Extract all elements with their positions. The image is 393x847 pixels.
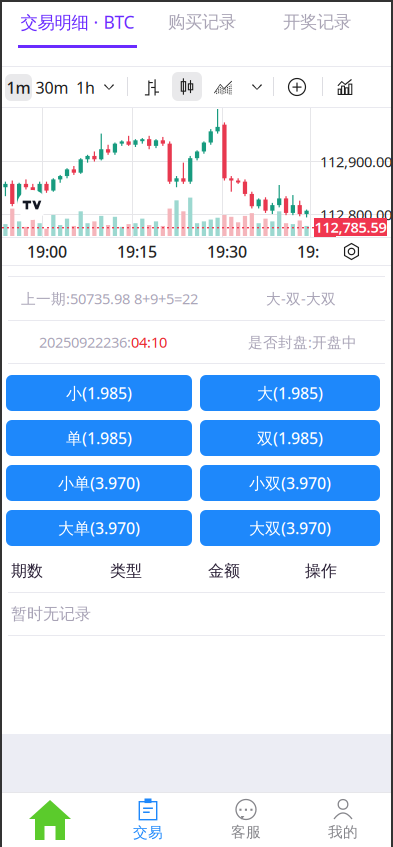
staticText: 112,900.00	[320, 152, 392, 171]
button[interactable]: 我的	[294, 793, 392, 847]
button[interactable]: Indicators	[332, 73, 358, 101]
staticText: 期数	[11, 561, 43, 581]
staticText: 小双(3.970)	[249, 472, 331, 494]
staticText: 类型	[110, 561, 142, 581]
staticText: 操作	[305, 561, 337, 581]
staticText: 大双(3.970)	[249, 517, 331, 539]
button[interactable]: Area chart	[210, 73, 236, 101]
staticText: 金额	[208, 561, 240, 581]
button[interactable]: Candle chart	[172, 72, 202, 101]
staticText: 19:	[297, 241, 319, 262]
staticText: 大(1.985)	[257, 382, 323, 404]
staticText: 19:15	[117, 241, 157, 262]
staticText: 19:00	[27, 241, 67, 262]
staticText: 大-双-大双	[266, 289, 336, 308]
staticText: 我的	[328, 823, 358, 841]
button[interactable]: Bar chart	[139, 73, 165, 101]
button[interactable]: More chart types	[247, 73, 267, 101]
staticText: 交易	[133, 823, 163, 841]
staticText: 上一期:50735.98 8+9+5=22	[21, 289, 198, 308]
button[interactable]: 30m	[38, 74, 66, 101]
staticText: 单(1.985)	[66, 427, 132, 449]
staticText: 双(1.985)	[257, 427, 323, 449]
button[interactable]: 1m	[5, 74, 32, 101]
staticText: 购买记录	[168, 11, 236, 33]
staticText: 19:30	[207, 241, 247, 262]
button[interactable]: 客服	[197, 793, 295, 847]
staticText: 客服	[231, 823, 261, 841]
button[interactable]: Chart settings	[338, 238, 365, 265]
staticText: 112,800.00	[320, 205, 392, 224]
button[interactable]: 交易明细 · BTC	[0, 0, 155, 66]
button[interactable]: Add indicator	[284, 73, 310, 101]
button[interactable]: 小双(3.970)	[200, 465, 380, 501]
staticText: 开奖记录	[283, 11, 351, 33]
button[interactable]: 开奖记录	[262, 0, 372, 44]
staticText: 小单(3.970)	[58, 472, 140, 494]
button[interactable]: 单(1.985)	[6, 420, 192, 456]
staticText: 小(1.985)	[66, 382, 132, 404]
button[interactable]: 首页	[1, 793, 99, 847]
staticText: 20250922236:	[39, 332, 131, 352]
staticText: 大单(3.970)	[58, 517, 140, 539]
staticText: 是否封盘:开盘中	[248, 332, 357, 352]
button[interactable]: More intervals	[99, 73, 119, 101]
button[interactable]: 交易	[99, 793, 197, 847]
button[interactable]: 大双(3.970)	[200, 510, 380, 546]
button[interactable]: 购买记录	[148, 0, 256, 44]
staticText: 04:10	[131, 332, 167, 352]
button[interactable]: 大(1.985)	[200, 375, 380, 411]
button[interactable]: 小单(3.970)	[6, 465, 192, 501]
staticText: 1m	[6, 77, 30, 98]
button[interactable]: 1h	[76, 74, 95, 101]
staticText: 交易明细 · BTC	[20, 10, 134, 33]
staticText: 暂时无记录	[11, 604, 91, 624]
button[interactable]: 双(1.985)	[200, 420, 380, 456]
staticText: 1h	[76, 77, 95, 98]
staticText: 30m	[35, 77, 68, 98]
staticText: 112,785.59	[314, 217, 386, 237]
button[interactable]: 大单(3.970)	[6, 510, 192, 546]
button[interactable]: 小(1.985)	[6, 375, 192, 411]
